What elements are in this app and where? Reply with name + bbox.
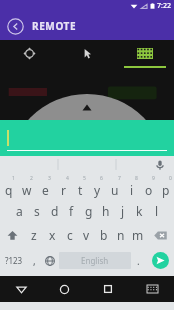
staticText: 7 — [118, 175, 121, 182]
button[interactable]: English — [59, 252, 131, 269]
button[interactable]: Backspace — [146, 223, 174, 247]
button[interactable]: ?123 — [0, 247, 27, 274]
button[interactable]: h — [97, 199, 114, 223]
button[interactable]: l — [148, 199, 165, 223]
button[interactable]: 1 — [0, 173, 18, 199]
button[interactable]: Home — [43, 276, 86, 302]
staticText: 5 — [83, 175, 86, 182]
button[interactable]: c — [61, 223, 78, 247]
staticText: 7:22 — [157, 1, 171, 11]
button[interactable]: 2 — [18, 173, 36, 199]
button[interactable] — [0, 120, 174, 156]
button[interactable]: 3 — [36, 173, 54, 199]
button[interactable]: 6 — [89, 173, 106, 199]
button[interactable]: z — [25, 223, 43, 247]
button[interactable]: 0 — [157, 173, 174, 199]
staticText: 8 — [135, 175, 138, 182]
button[interactable]: s — [28, 199, 46, 223]
button[interactable]: a — [10, 199, 28, 223]
staticText: 0 — [169, 175, 172, 182]
button[interactable]: 4 — [54, 173, 72, 199]
button[interactable]: x — [43, 223, 61, 247]
button[interactable]: d — [46, 199, 63, 223]
staticText: 1 — [12, 175, 15, 182]
staticText: o — [145, 182, 153, 198]
button[interactable]: k — [131, 199, 148, 223]
button[interactable]: Change language — [41, 247, 59, 274]
button[interactable]: f — [63, 199, 80, 223]
button[interactable]: Back — [0, 276, 43, 302]
staticText: ?123 — [5, 255, 23, 266]
button[interactable]: 7 — [106, 173, 123, 199]
staticText: d — [51, 203, 59, 219]
staticText: 3 — [48, 175, 51, 182]
staticText: c — [67, 227, 73, 243]
staticText: l — [155, 203, 159, 219]
button[interactable]: n — [112, 223, 129, 247]
staticText: q — [5, 182, 13, 198]
staticText: 2 — [30, 175, 33, 182]
staticText: 9 — [152, 175, 155, 182]
button[interactable]: 8 — [123, 173, 140, 199]
staticText: f — [69, 203, 74, 219]
staticText: h — [102, 203, 110, 219]
staticText: r — [61, 182, 66, 198]
staticText: w — [22, 182, 32, 198]
staticText: k — [136, 203, 143, 219]
staticText: p — [162, 182, 170, 198]
button[interactable]: Pointer mode — [58, 40, 116, 66]
staticText: English — [81, 255, 109, 266]
button[interactable]: Send — [146, 247, 174, 274]
button[interactable]: Recents — [86, 276, 130, 302]
staticText: m — [132, 227, 144, 243]
button[interactable]: j — [114, 199, 131, 223]
staticText: s — [34, 203, 40, 219]
button[interactable]: 5 — [72, 173, 89, 199]
staticText: a — [16, 203, 23, 219]
button[interactable]: Keyboard mode — [116, 40, 174, 66]
button[interactable]: 9 — [140, 173, 157, 199]
staticText: x — [49, 227, 56, 243]
button[interactable]: Keyboard — [130, 276, 174, 302]
staticText: . — [137, 254, 140, 268]
staticText: z — [31, 227, 37, 243]
staticText: e — [42, 182, 49, 198]
button[interactable]: v — [78, 223, 95, 247]
staticText: 4 — [66, 175, 69, 182]
staticText: b — [100, 227, 108, 243]
button[interactable]: m — [129, 223, 146, 247]
button[interactable]: . — [131, 247, 146, 274]
staticText: i — [130, 182, 134, 198]
staticText: n — [117, 227, 125, 243]
staticText: t — [78, 182, 83, 198]
button[interactable]: Shift — [0, 223, 25, 247]
button[interactable]: g — [80, 199, 97, 223]
staticText: g — [85, 203, 93, 219]
button[interactable]: Back — [7, 18, 24, 35]
button[interactable]: D-pad mode — [0, 40, 58, 66]
staticText: j — [121, 203, 125, 219]
staticText: , — [33, 254, 36, 268]
staticText: REMOTE — [32, 19, 77, 33]
staticText: u — [111, 182, 119, 198]
staticText: 6 — [100, 175, 103, 182]
button[interactable]: , — [27, 247, 41, 274]
staticText: v — [83, 227, 90, 243]
staticText: y — [94, 182, 101, 198]
button[interactable]: b — [95, 223, 112, 247]
button[interactable]: Voice input — [154, 159, 166, 171]
